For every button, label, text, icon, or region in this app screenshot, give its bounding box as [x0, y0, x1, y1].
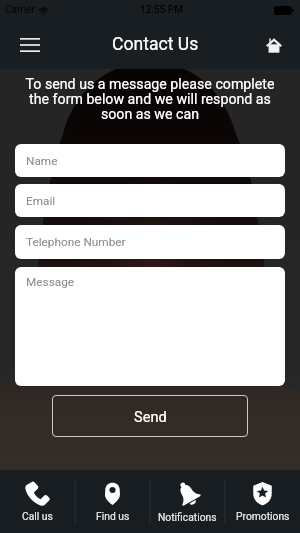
staticText: Notifications — [158, 511, 217, 523]
button[interactable]: Find us — [75, 470, 150, 533]
button[interactable]: Call us — [0, 470, 75, 533]
button[interactable]: Message — [15, 267, 285, 386]
button[interactable]: Menu — [14, 29, 46, 61]
staticText: Promotions — [236, 510, 290, 522]
staticText: Call us — [22, 510, 53, 522]
staticText: Name — [26, 154, 58, 168]
button[interactable]: Promotions — [225, 470, 300, 533]
button[interactable]: Home — [258, 29, 290, 61]
staticText: Contact Us — [112, 34, 199, 55]
staticText: Telephone Number — [26, 235, 126, 249]
button[interactable]: Email — [15, 184, 285, 217]
staticText: Message — [26, 275, 75, 289]
button[interactable]: Notifications — [150, 470, 225, 533]
button[interactable]: Send — [52, 395, 248, 437]
staticText: Carrier — [5, 4, 35, 16]
staticText: 12:55 PM — [140, 4, 183, 16]
button[interactable]: Telephone Number — [15, 225, 285, 259]
staticText: To send us a message please complete the… — [0, 76, 300, 123]
button[interactable]: Name — [15, 144, 285, 177]
staticText: Send — [134, 408, 167, 425]
staticText: Email — [26, 194, 56, 208]
staticText: Find us — [96, 510, 130, 522]
